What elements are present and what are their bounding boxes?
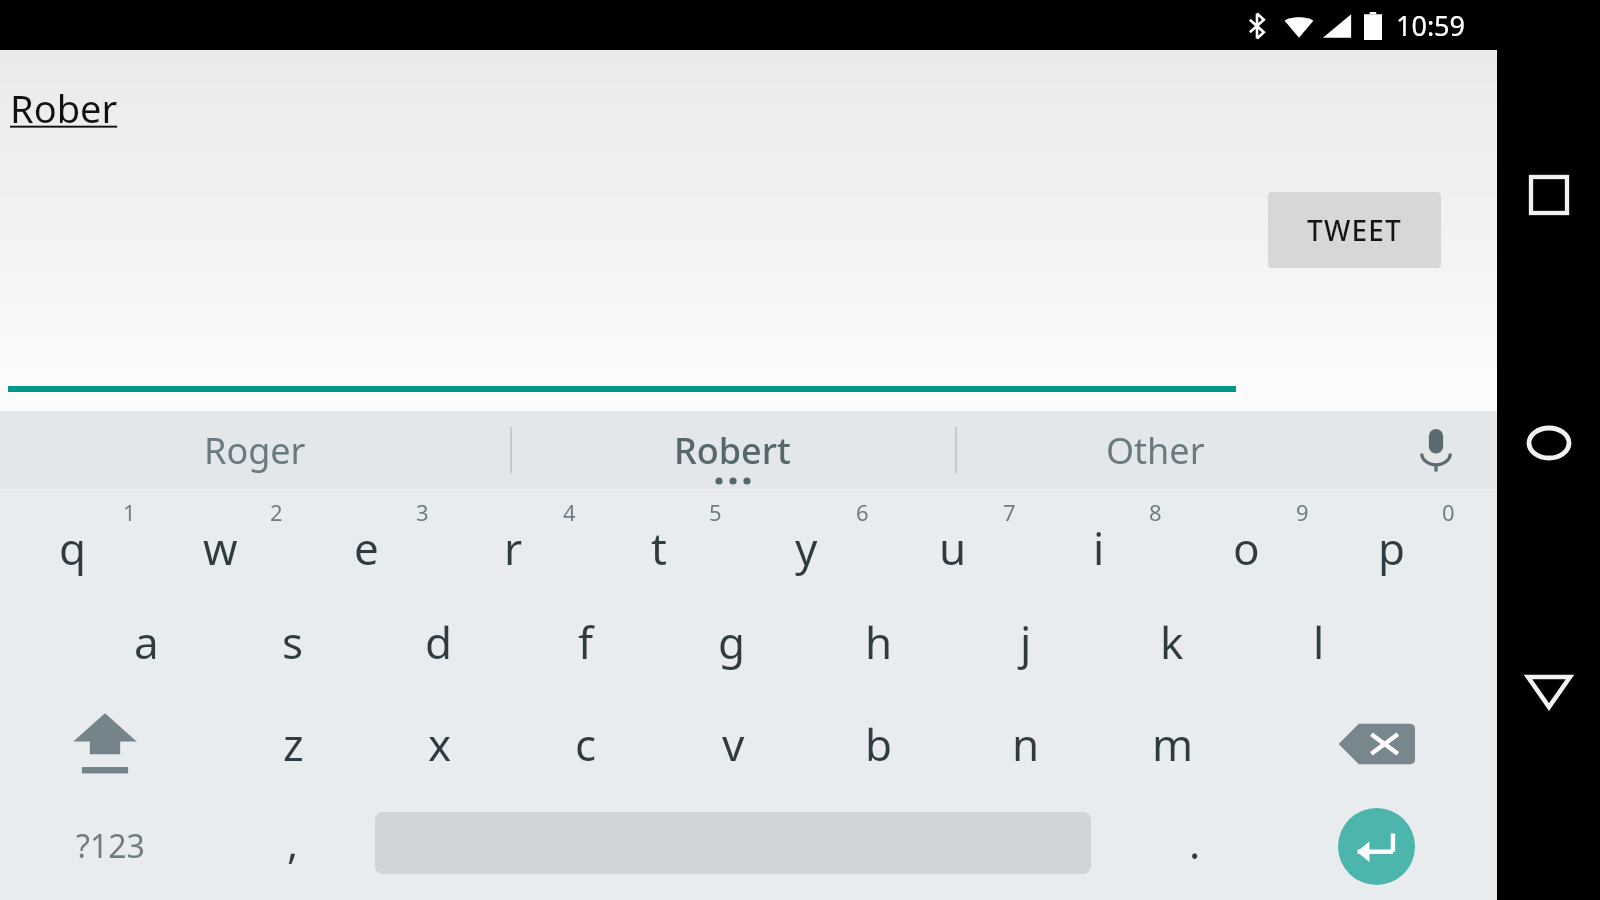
button[interactable]: d xyxy=(366,591,512,693)
staticText: 4 xyxy=(563,497,576,527)
staticText: Rober xyxy=(10,82,118,134)
button[interactable]: q xyxy=(0,489,146,591)
staticText: 5 xyxy=(709,497,722,527)
button[interactable]: h xyxy=(806,591,952,693)
staticText: o xyxy=(1233,518,1260,578)
staticText: v xyxy=(722,714,745,774)
button[interactable]: z xyxy=(220,693,366,795)
button[interactable]: e xyxy=(293,489,439,591)
staticText: k xyxy=(1160,612,1184,672)
staticText: 2 xyxy=(270,497,283,527)
button[interactable]: a xyxy=(73,591,219,693)
button[interactable]: f xyxy=(513,591,659,693)
button[interactable]: Roger xyxy=(0,411,510,489)
staticText: b xyxy=(865,714,893,774)
button[interactable]: Enter xyxy=(1285,795,1497,897)
button[interactable]: w xyxy=(147,489,293,591)
staticText: s xyxy=(282,612,304,672)
button[interactable]: m xyxy=(1100,693,1246,795)
button[interactable]: v xyxy=(660,693,806,795)
staticText: g xyxy=(718,612,746,672)
button[interactable]: n xyxy=(953,693,1099,795)
staticText: y xyxy=(795,518,818,578)
staticText: e xyxy=(354,518,379,578)
button[interactable]: p xyxy=(1319,489,1465,591)
button[interactable]: y xyxy=(733,489,879,591)
staticText: a xyxy=(134,612,159,672)
button[interactable]: r xyxy=(440,489,586,591)
staticText: 7 xyxy=(1003,497,1016,527)
button[interactable]: ?123 xyxy=(0,795,220,897)
button[interactable]: TWEET xyxy=(1268,192,1441,268)
button[interactable]: x xyxy=(367,693,513,795)
staticText: r xyxy=(504,518,523,578)
button[interactable]: Shift xyxy=(0,693,210,795)
staticText: i xyxy=(1093,518,1105,578)
staticText: Robert xyxy=(674,426,791,475)
staticText: TWEET xyxy=(1307,211,1403,249)
staticText: x xyxy=(428,714,452,774)
staticText: l xyxy=(1313,612,1325,672)
staticText: 3 xyxy=(416,497,429,527)
button[interactable]: k xyxy=(1099,591,1245,693)
button[interactable]: i xyxy=(1026,489,1172,591)
staticText: , xyxy=(287,814,299,871)
staticText: t xyxy=(651,518,667,578)
button[interactable]: o xyxy=(1173,489,1319,591)
staticText: 1 xyxy=(123,497,136,527)
staticText: u xyxy=(939,518,967,578)
button[interactable]: t xyxy=(586,489,732,591)
staticText: p xyxy=(1378,518,1406,578)
staticText: 9 xyxy=(1296,497,1309,527)
staticText: 6 xyxy=(856,497,869,527)
staticText: w xyxy=(203,518,238,578)
button[interactable]: Voice input xyxy=(1381,411,1491,489)
button[interactable]: , xyxy=(220,795,366,897)
staticText: d xyxy=(425,612,453,672)
staticText: 0 xyxy=(1442,497,1455,527)
staticText: 8 xyxy=(1149,497,1162,527)
button[interactable]: Robert xyxy=(510,411,955,489)
staticText: . xyxy=(1189,814,1201,871)
button[interactable]: b xyxy=(806,693,952,795)
staticText: c xyxy=(575,714,597,774)
button[interactable]: Recent apps xyxy=(1497,148,1600,241)
button[interactable]: c xyxy=(513,693,659,795)
button[interactable]: Home xyxy=(1497,396,1600,489)
button[interactable]: Back xyxy=(1497,645,1600,738)
button[interactable]: . xyxy=(1120,795,1270,897)
staticText: ?123 xyxy=(76,824,145,868)
staticText: m xyxy=(1152,714,1194,774)
staticText: n xyxy=(1012,714,1040,774)
staticText: j xyxy=(1020,612,1032,672)
staticText: q xyxy=(59,518,87,578)
button[interactable]: l xyxy=(1246,591,1392,693)
staticText: f xyxy=(578,612,594,672)
button[interactable]: Other xyxy=(955,411,1355,489)
staticText: z xyxy=(283,714,304,774)
staticText: h xyxy=(865,612,893,672)
button[interactable]: Backspace xyxy=(1285,693,1497,795)
staticText: Other xyxy=(1106,426,1205,475)
button[interactable]: j xyxy=(953,591,1099,693)
button[interactable]: g xyxy=(659,591,805,693)
staticText: 10:59 xyxy=(1396,7,1466,44)
button[interactable]: s xyxy=(220,591,366,693)
staticText: Roger xyxy=(204,426,306,475)
button[interactable]: u xyxy=(880,489,1026,591)
